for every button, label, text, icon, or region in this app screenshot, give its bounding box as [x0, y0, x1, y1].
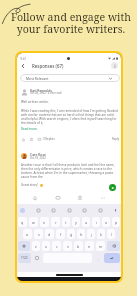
staticText: e — [43, 220, 46, 225]
button[interactable]: h — [77, 229, 85, 239]
button[interactable]: r — [51, 217, 60, 227]
staticText: Great story! — [21, 183, 39, 187]
button[interactable]: ?123 — [18, 253, 31, 263]
staticText: Karl Reynolds — [30, 88, 52, 93]
button[interactable]: d — [45, 229, 54, 239]
button[interactable]: Google — [20, 208, 25, 213]
button[interactable]: Sticker — [51, 208, 56, 213]
staticText: While I was reading this, I am reminded … — [21, 109, 119, 125]
staticText: ?123 — [21, 256, 28, 260]
button[interactable]: f — [56, 229, 65, 239]
staticText: Oct 28, 2022 · 4 min read — [30, 91, 62, 95]
staticText: v — [67, 244, 69, 249]
staticText: n — [88, 244, 91, 249]
button[interactable]: More — [98, 208, 103, 213]
button[interactable]: Enter — [104, 253, 120, 263]
button[interactable]: Reply — [112, 137, 120, 141]
button[interactable]: t — [62, 217, 70, 227]
button[interactable]: q — [18, 217, 27, 227]
button[interactable]: o — [102, 217, 110, 227]
staticText: o — [105, 220, 108, 225]
button[interactable]: x — [42, 241, 50, 251]
button[interactable]: Read more. — [21, 127, 38, 131]
button[interactable]: w — [29, 217, 38, 227]
button[interactable]: y — [72, 217, 80, 227]
button[interactable]: Profile — [111, 62, 118, 69]
button[interactable]: k — [97, 229, 105, 239]
button[interactable]: Send response — [109, 184, 116, 191]
staticText: g — [70, 232, 73, 237]
staticText: a — [26, 232, 29, 237]
staticText: c — [56, 244, 58, 249]
button[interactable]: Emoji — [33, 253, 41, 263]
button[interactable]: m — [96, 241, 105, 251]
button[interactable]: Clipboard — [67, 208, 72, 213]
staticText: u — [85, 220, 88, 225]
button[interactable]: n — [85, 241, 94, 251]
button[interactable]: z — [32, 241, 40, 251]
button[interactable]: a — [23, 229, 32, 239]
staticText: Another issue is that if all these produ… — [21, 163, 119, 179]
button[interactable]: Backspace — [107, 241, 120, 251]
button[interactable]: GIF — [36, 208, 41, 213]
button[interactable]: l — [107, 229, 115, 239]
button[interactable]: Back — [18, 61, 27, 70]
staticText: . — [98, 256, 99, 261]
staticText: 9:41 — [20, 57, 27, 61]
button[interactable]: c — [52, 241, 61, 251]
staticText: i — [96, 220, 97, 225]
button[interactable]: Clap — [31, 194, 39, 202]
staticText: j — [91, 232, 92, 237]
staticText: p — [115, 220, 118, 225]
button[interactable]: Bookmark — [76, 194, 84, 202]
staticText: t — [65, 220, 67, 225]
button[interactable]: b — [74, 241, 83, 251]
button[interactable]: Voice input — [113, 208, 118, 213]
button[interactable]: e — [40, 217, 49, 227]
staticText: z — [35, 244, 37, 249]
staticText: Oct 18, 2022 — [30, 156, 46, 160]
staticText: h — [80, 232, 83, 237]
button[interactable]: Clap — [21, 137, 25, 141]
staticText: d — [48, 232, 51, 237]
staticText: Follow and engage with your favorite wri… — [5, 10, 137, 36]
staticText: Cate Rose — [30, 152, 47, 157]
staticText: r — [55, 220, 57, 225]
staticText: Well written article. — [21, 100, 49, 104]
staticText: Responses (67) — [32, 63, 64, 69]
button[interactable]: Bookmark — [29, 137, 33, 141]
button[interactable]: v — [63, 241, 72, 251]
button[interactable]: Shift — [18, 241, 30, 251]
button[interactable]: j — [87, 229, 95, 239]
button[interactable]: g — [67, 229, 75, 239]
staticText: x — [45, 244, 47, 249]
staticText: k — [100, 232, 102, 237]
button[interactable]: s — [34, 229, 43, 239]
staticText: y — [75, 220, 77, 225]
button[interactable]: Most Relevant — [20, 74, 120, 82]
button[interactable]: Respond — [54, 194, 62, 202]
button[interactable]: i — [92, 217, 100, 227]
staticText: f — [60, 232, 62, 237]
staticText: m — [99, 244, 103, 249]
button[interactable]: Settings — [82, 208, 87, 213]
staticText: w — [32, 220, 35, 225]
staticText: 3 Replies — [43, 137, 55, 141]
staticText: q — [21, 220, 24, 225]
button[interactable]: Respond — [37, 137, 41, 141]
button[interactable]: More — [99, 194, 107, 202]
staticText: s — [38, 232, 40, 237]
staticText: l — [111, 232, 112, 237]
button[interactable]: u — [82, 217, 90, 227]
staticText: Most Relevant — [26, 76, 49, 81]
button[interactable]: p — [112, 217, 120, 227]
staticText: b — [77, 244, 80, 249]
